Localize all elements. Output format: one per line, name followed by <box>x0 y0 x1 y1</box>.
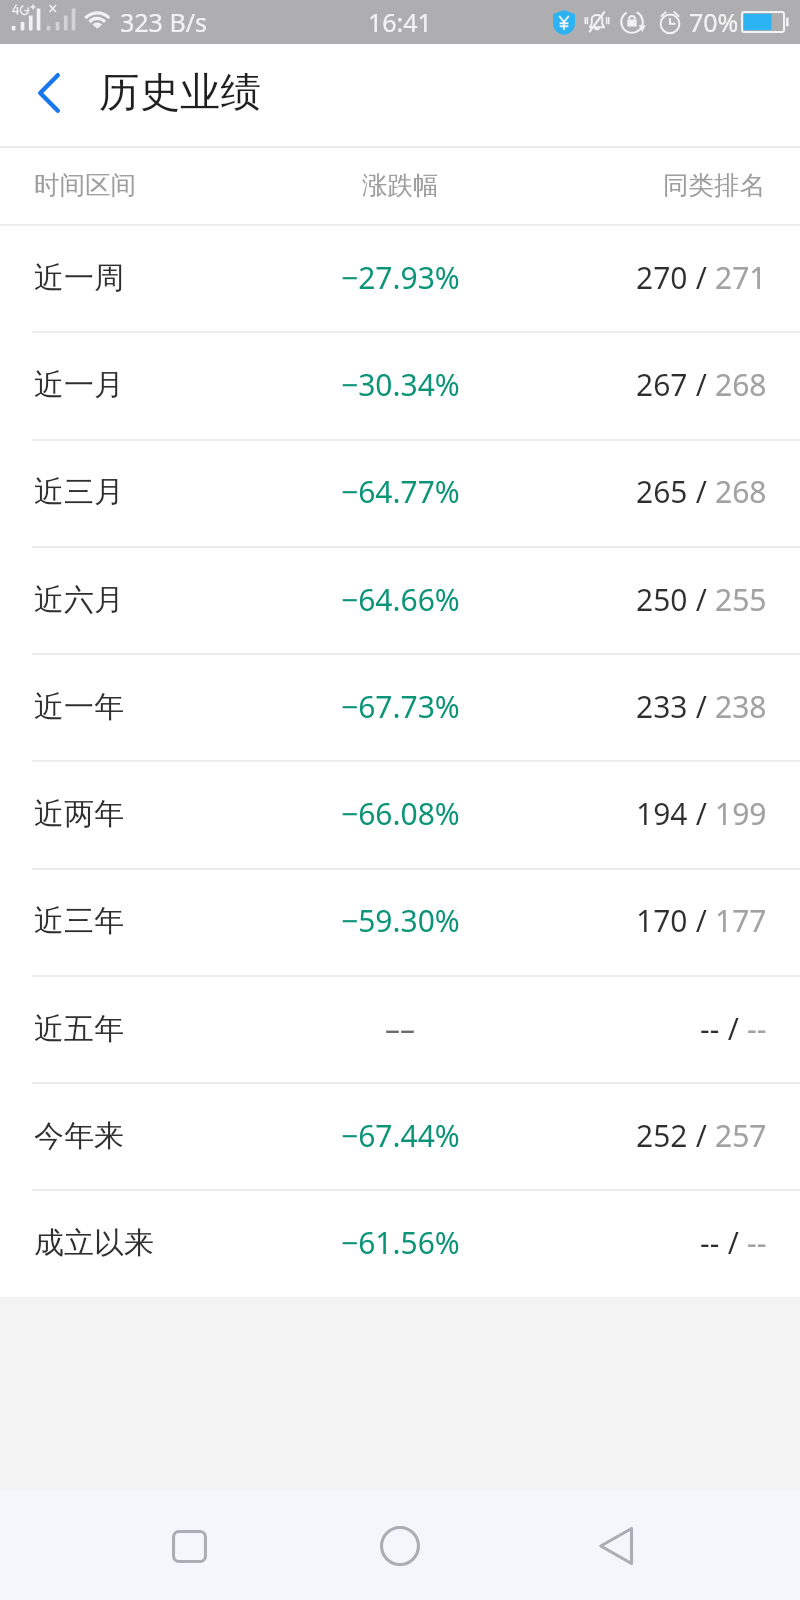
staticText: −66.08% <box>341 793 460 834</box>
staticText: / <box>688 364 715 405</box>
staticText: −67.73% <box>341 686 460 727</box>
staticText: 199 <box>715 793 767 834</box>
staticText: / <box>688 686 715 727</box>
staticText: 238 <box>715 686 767 727</box>
staticText: 近一周 <box>34 259 124 297</box>
staticText: 近三月 <box>34 473 124 511</box>
staticText: 194 <box>636 793 688 834</box>
staticText: 70% <box>689 5 739 39</box>
staticText: / <box>720 1008 747 1049</box>
staticText: 252 <box>636 1115 688 1156</box>
button[interactable]: 今年来 <box>0 1083 800 1190</box>
staticText: 267 <box>636 364 688 405</box>
staticText: / <box>720 1222 747 1263</box>
staticText: 177 <box>715 900 767 941</box>
staticText: 成立以来 <box>34 1224 154 1262</box>
staticText: -- <box>747 1222 767 1263</box>
staticText: −67.44% <box>341 1115 460 1156</box>
staticText: 265 <box>636 471 688 512</box>
staticText: 268 <box>715 364 767 405</box>
staticText: −30.34% <box>341 364 460 405</box>
staticText: 270 <box>636 257 688 298</box>
staticText: / <box>688 793 715 834</box>
staticText: / <box>688 1115 715 1156</box>
staticText: −27.93% <box>341 257 460 298</box>
staticText: -- <box>700 1008 720 1049</box>
button[interactable]: 近三年 <box>0 868 800 975</box>
staticText: -- <box>747 1008 767 1049</box>
button[interactable]: Home <box>355 1504 445 1588</box>
button[interactable]: 成立以来 <box>0 1190 800 1297</box>
button[interactable]: Back <box>571 1504 661 1588</box>
button[interactable]: 近五年 <box>0 976 800 1083</box>
button[interactable]: 近六月 <box>0 547 800 654</box>
button[interactable]: Recent apps <box>144 1504 234 1588</box>
staticText: / <box>688 579 715 620</box>
button[interactable]: Back <box>9 50 89 136</box>
staticText: –– <box>385 1008 415 1049</box>
button[interactable]: 近一年 <box>0 654 800 761</box>
staticText: / <box>688 471 715 512</box>
staticText: 近三年 <box>34 902 124 940</box>
staticText: −64.77% <box>341 471 460 512</box>
staticText: 170 <box>636 900 688 941</box>
staticText: −61.56% <box>341 1222 460 1263</box>
staticText: 涨跌幅 <box>362 169 439 201</box>
staticText: 271 <box>715 257 767 298</box>
staticText: 268 <box>715 471 767 512</box>
staticText: 近两年 <box>34 795 124 833</box>
button[interactable]: 近一月 <box>0 332 800 439</box>
staticText: 历史业绩 <box>99 67 261 118</box>
staticText: −64.66% <box>341 579 460 620</box>
staticText: 250 <box>636 579 688 620</box>
staticText: / <box>688 257 715 298</box>
staticText: 今年来 <box>34 1117 124 1155</box>
button[interactable]: 近两年 <box>0 761 800 868</box>
staticText: 近一年 <box>34 688 124 726</box>
staticText: 16:41 <box>368 5 432 39</box>
staticText: −59.30% <box>341 900 460 941</box>
staticText: 近六月 <box>34 581 124 619</box>
button[interactable]: 近三月 <box>0 439 800 546</box>
staticText: 255 <box>715 579 767 620</box>
staticText: 近五年 <box>34 1010 124 1048</box>
staticText: 323 B/s <box>120 5 207 39</box>
staticText: 近一月 <box>34 366 124 404</box>
staticText: 时间区间 <box>34 169 136 201</box>
staticText: / <box>688 900 715 941</box>
staticText: -- <box>700 1222 720 1263</box>
button[interactable]: 近一周 <box>0 225 800 332</box>
staticText: 同类排名 <box>663 169 765 201</box>
staticText: 233 <box>636 686 688 727</box>
staticText: 257 <box>715 1115 767 1156</box>
